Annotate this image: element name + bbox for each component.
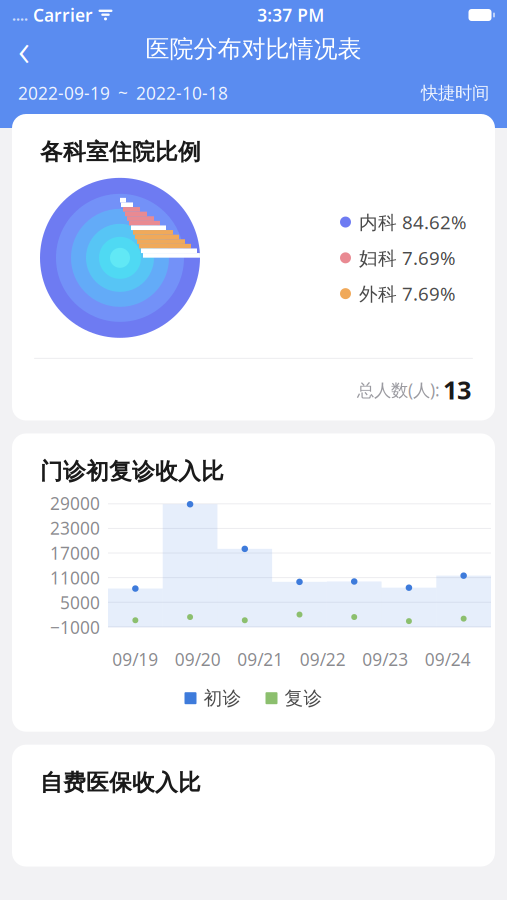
staticText: 23000: [50, 517, 100, 540]
staticText: ~: [118, 81, 128, 104]
staticText: 复诊: [284, 687, 322, 710]
staticText: Carrier: [33, 3, 93, 26]
button[interactable]: 快捷时间: [421, 74, 489, 112]
staticText: 09/23: [362, 648, 408, 671]
staticText: 外科 7.69%: [359, 281, 456, 306]
staticText: 内科 84.62%: [359, 210, 467, 234]
staticText: 09/19: [112, 648, 158, 671]
staticText: 2022-10-18: [136, 81, 228, 104]
staticText: 5000: [60, 591, 100, 614]
staticText: 自费医保收入比: [40, 769, 201, 796]
button[interactable]: 2022-09-19: [18, 73, 228, 112]
staticText: 09/21: [237, 648, 283, 671]
staticText: 29000: [50, 492, 100, 515]
staticText: 总人数(人):: [357, 378, 440, 401]
staticText: 3:37 PM: [257, 3, 324, 26]
staticText: ‹: [18, 19, 30, 79]
staticText: 快捷时间: [421, 82, 489, 104]
staticText: 2022-09-19: [18, 81, 110, 104]
staticText: −1000: [50, 616, 100, 639]
staticText: 09/22: [300, 648, 346, 671]
staticText: 各科室住院比例: [40, 138, 201, 166]
staticText: 医院分布对比情况表: [145, 34, 361, 64]
staticText: ....: [12, 5, 28, 25]
staticText: 门诊初复诊收入比: [40, 457, 224, 485]
staticText: 17000: [50, 541, 100, 564]
button[interactable]: Back: [0, 27, 48, 71]
staticText: 11000: [50, 566, 100, 589]
staticText: 初诊: [203, 687, 241, 710]
staticText: 妇科 7.69%: [359, 245, 456, 270]
staticText: 13: [443, 373, 471, 406]
staticText: 09/20: [175, 648, 221, 671]
staticText: 09/24: [425, 648, 471, 671]
